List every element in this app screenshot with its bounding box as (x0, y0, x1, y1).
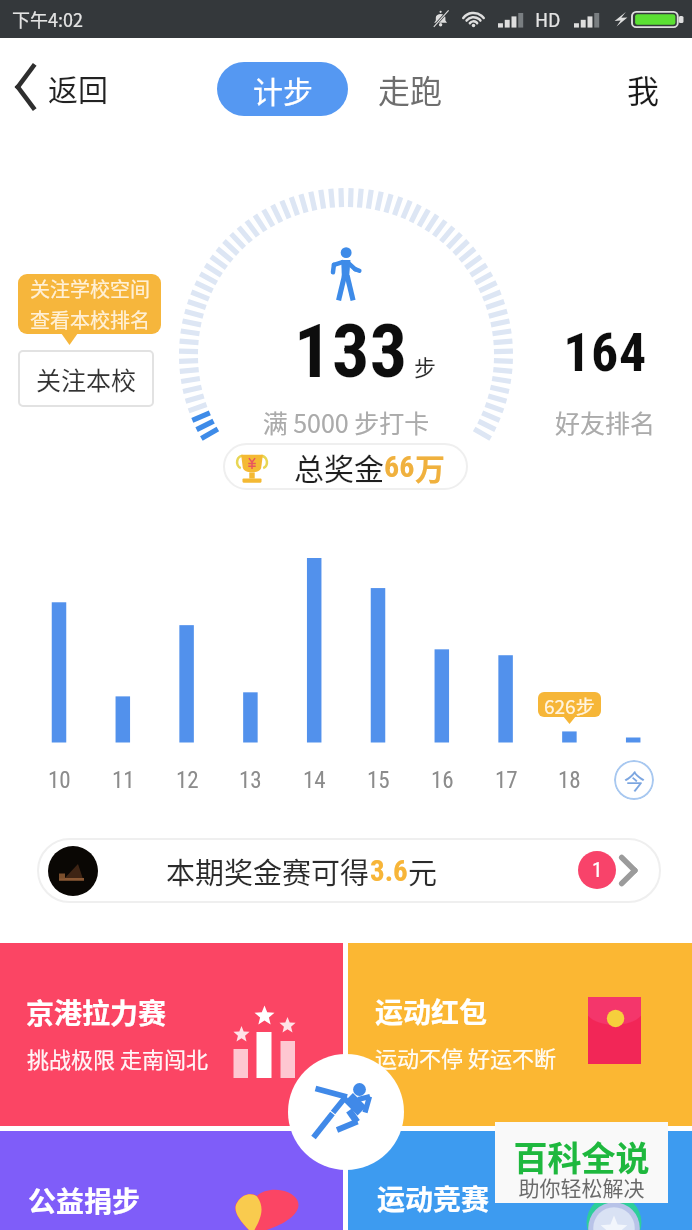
staticText: 走跑 (378, 66, 443, 112)
staticText: 下午4:02 (12, 6, 83, 32)
staticText: 66 (384, 449, 415, 484)
button[interactable]: 计步 (217, 62, 348, 116)
staticText: 3.6 (370, 854, 408, 888)
staticText: 好友排名 (530, 404, 680, 440)
staticText: 百科全说 (495, 1132, 668, 1181)
staticText: 626步 (544, 692, 595, 717)
staticText: 13 (239, 767, 262, 794)
staticText: 京港拉力赛 (26, 992, 167, 1033)
staticText: 17 (495, 767, 518, 794)
staticText: 16 (431, 767, 454, 794)
staticText: 本期奖金赛可得 (166, 850, 370, 892)
button[interactable]: 返回 (10, 58, 108, 116)
staticText: 今 (624, 765, 645, 795)
button[interactable]: 公益捐步 (0, 1131, 343, 1230)
button[interactable]: Start running (288, 1054, 404, 1170)
staticText: 133 (294, 308, 408, 395)
button[interactable]: 百科全说 (495, 1122, 668, 1203)
button[interactable]: 运动红包 (348, 943, 692, 1126)
button[interactable]: 运动竞赛 (348, 1131, 692, 1230)
staticText: 运动红包 (375, 991, 488, 1032)
staticText: 164 (530, 321, 680, 384)
button[interactable]: 本期奖金赛可得 (37, 838, 661, 903)
staticText: 助你轻松解决 (495, 1172, 668, 1202)
staticText: 关注本校 (36, 361, 137, 397)
staticText: 14 (303, 767, 326, 794)
staticText: 步 (414, 350, 437, 382)
button[interactable]: 总奖金 (223, 443, 468, 490)
staticText: 查看本校排名 (30, 305, 150, 334)
staticText: 18 (558, 767, 581, 794)
button[interactable]: 关注学校空间 (18, 274, 161, 334)
staticText: 公益捐步 (28, 1180, 141, 1221)
staticText: 满 5000 步打卡 (0, 404, 692, 440)
staticText: 总奖金 (294, 445, 384, 488)
staticText: HD (535, 6, 561, 32)
staticText: 10 (48, 767, 71, 794)
staticText: 元 (408, 850, 438, 892)
staticText: 计步 (253, 68, 313, 111)
other: More (619, 856, 637, 885)
staticText: 我 (627, 66, 660, 112)
button[interactable]: 关注本校 (18, 350, 154, 407)
staticText: 关注学校空间 (30, 274, 150, 303)
staticText: 运动不停 好运不断 (375, 1041, 556, 1073)
button[interactable]: 走跑 (373, 62, 447, 116)
staticText: 运动竞赛 (377, 1178, 490, 1219)
button[interactable]: 京港拉力赛 (0, 943, 343, 1126)
button[interactable]: 我 (613, 62, 673, 116)
button[interactable]: 今 (614, 760, 654, 800)
staticText: 万 (415, 445, 445, 488)
staticText: 挑战极限 走南闯北 (27, 1042, 208, 1074)
staticText: 15 (367, 767, 390, 794)
staticText: 12 (176, 767, 199, 794)
staticText: 1 (592, 858, 603, 883)
staticText: 11 (112, 767, 135, 794)
staticText: 返回 (48, 66, 108, 109)
